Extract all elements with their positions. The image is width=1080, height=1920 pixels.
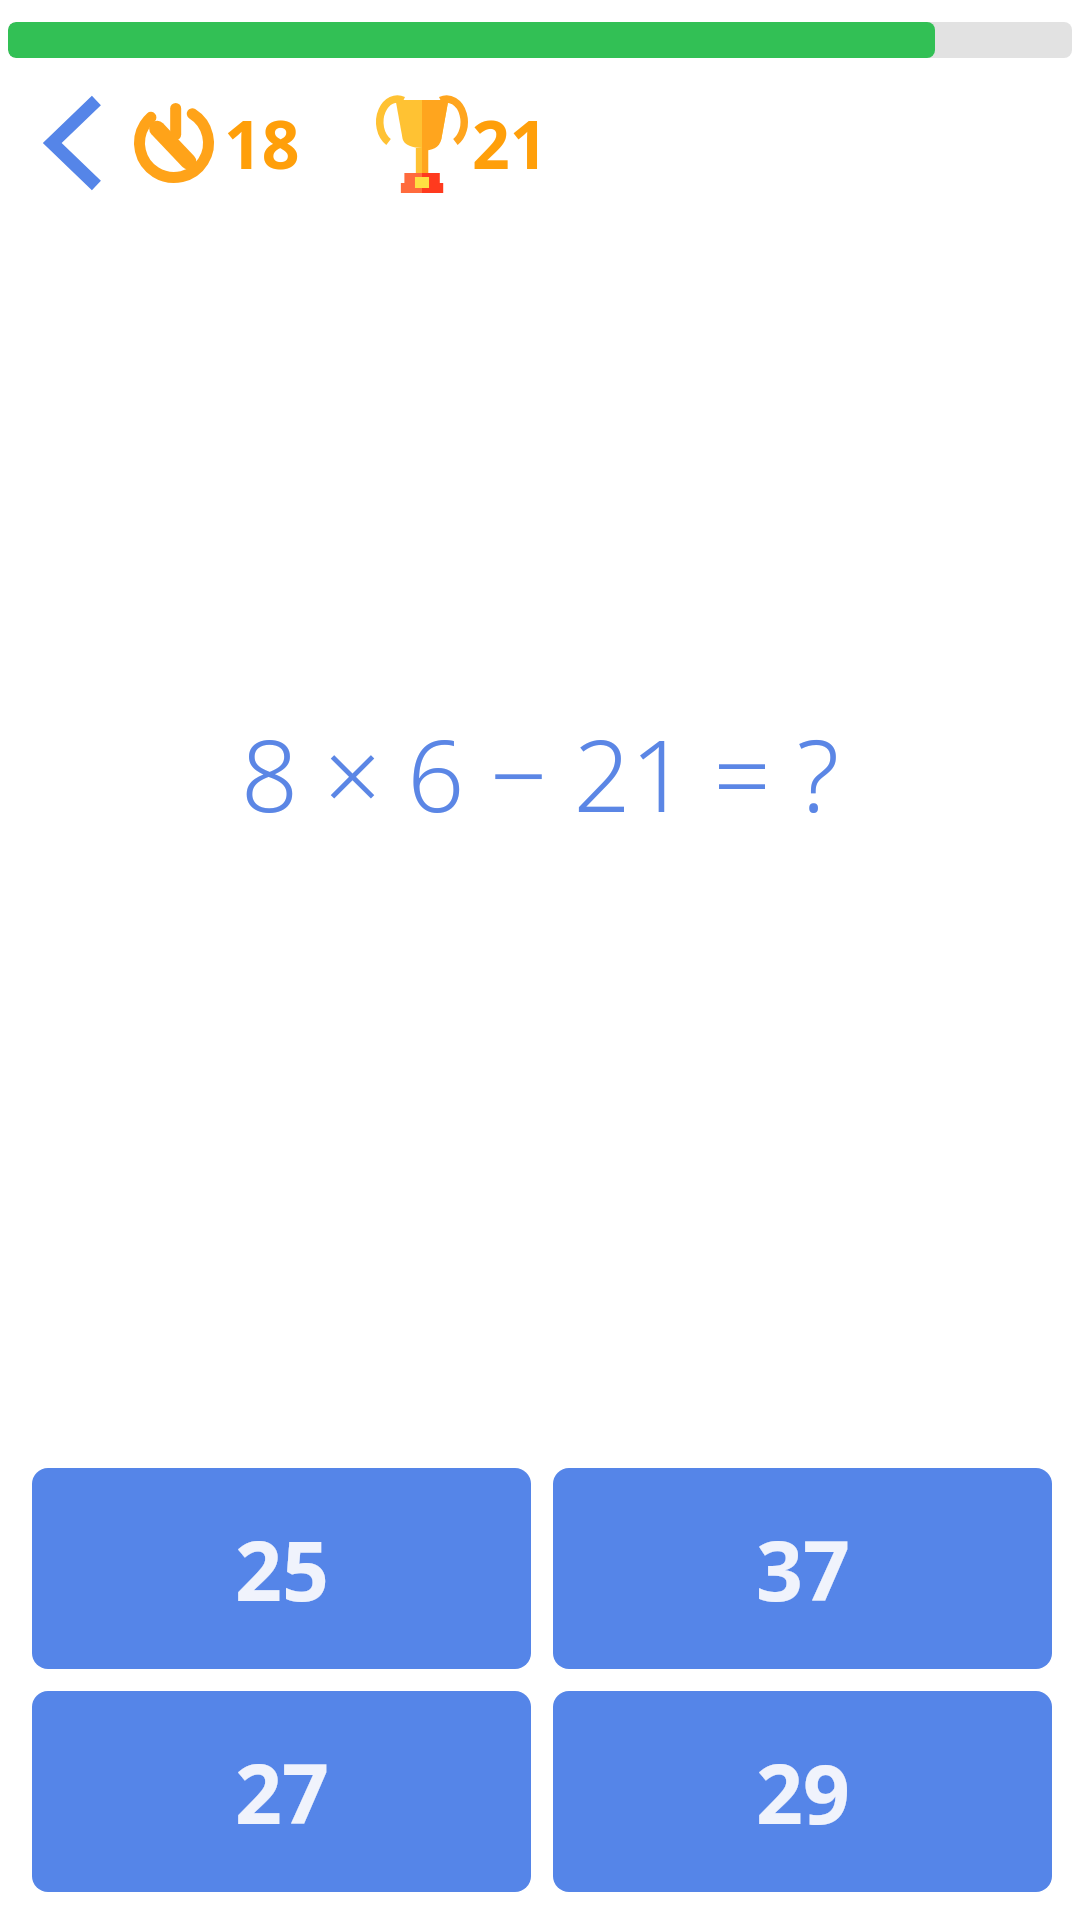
- staticText: 27: [235, 1736, 329, 1848]
- staticText: 18: [224, 98, 300, 188]
- button[interactable]: Back: [26, 91, 120, 195]
- staticText: 21: [472, 98, 548, 188]
- staticText: 25: [235, 1513, 329, 1625]
- staticText: 8 × 6 − 21 = ?: [241, 705, 839, 841]
- staticText: 37: [756, 1513, 850, 1625]
- button[interactable]: 27: [32, 1691, 531, 1892]
- button[interactable]: 37: [553, 1468, 1052, 1669]
- button[interactable]: 25: [32, 1468, 531, 1669]
- button[interactable]: 29: [553, 1691, 1052, 1892]
- staticText: 29: [756, 1736, 850, 1848]
